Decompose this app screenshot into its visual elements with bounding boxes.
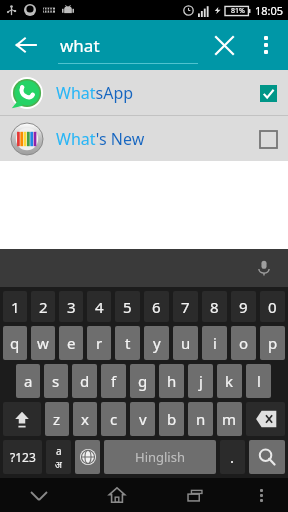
button[interactable]: Delete <box>246 402 285 436</box>
staticText: v <box>139 409 147 429</box>
button[interactable]: 9 <box>231 291 256 322</box>
staticText: e <box>67 333 76 353</box>
staticText: t <box>125 333 131 353</box>
button[interactable]: e <box>59 326 83 360</box>
staticText: अ <box>55 458 62 470</box>
button[interactable]: 5 <box>115 291 140 322</box>
button[interactable]: 2 <box>31 291 55 322</box>
button[interactable]: Change input language <box>75 440 100 474</box>
staticText: j <box>199 371 203 391</box>
button[interactable]: w <box>31 326 55 360</box>
button[interactable]: h <box>159 364 184 398</box>
staticText: r <box>96 333 103 353</box>
staticText: d <box>80 371 90 391</box>
button[interactable]: Shift <box>3 402 41 436</box>
staticText: Hinglish <box>135 448 185 466</box>
staticText: . <box>230 447 235 467</box>
button[interactable]: ?123 <box>3 440 42 474</box>
staticText: g <box>138 371 148 391</box>
button[interactable]: Clear search <box>204 25 244 65</box>
button[interactable]: 1 <box>3 291 27 322</box>
staticText: q <box>10 333 20 353</box>
button[interactable]: 4 <box>87 291 111 322</box>
button[interactable]: More options <box>234 478 288 512</box>
button[interactable]: Voice input <box>250 254 278 282</box>
button[interactable]: 6 <box>144 291 169 322</box>
staticText: WhatsApp <box>56 82 258 104</box>
button[interactable]: s <box>44 364 68 398</box>
button[interactable]: 3 <box>59 291 83 322</box>
button[interactable]: q <box>3 326 27 360</box>
button[interactable]: c <box>101 402 126 436</box>
staticText: 7 <box>181 297 190 317</box>
button[interactable]: Back <box>4 23 48 67</box>
button[interactable]: i <box>202 326 227 360</box>
staticText: l <box>257 371 261 391</box>
button[interactable]: . <box>220 440 245 474</box>
button[interactable]: What's New <box>0 116 288 161</box>
staticText: ?123 <box>10 449 36 465</box>
button[interactable]: b <box>159 402 184 436</box>
staticText: m <box>222 409 237 429</box>
staticText: k <box>225 371 234 391</box>
staticText: a <box>56 444 62 458</box>
staticText: p <box>268 333 278 353</box>
button[interactable]: p <box>260 326 285 360</box>
button[interactable]: Switch language <box>46 440 71 474</box>
button[interactable]: o <box>231 326 256 360</box>
button[interactable]: Home <box>78 478 156 512</box>
button[interactable]: 7 <box>173 291 198 322</box>
button[interactable]: n <box>188 402 213 436</box>
button[interactable]: g <box>130 364 155 398</box>
button[interactable]: 8 <box>202 291 227 322</box>
staticText: 81% <box>231 6 245 16</box>
staticText: z <box>53 409 61 429</box>
button[interactable]: k <box>217 364 242 398</box>
button[interactable]: 0 <box>260 291 285 322</box>
staticText: w <box>37 333 49 353</box>
button[interactable]: j <box>188 364 213 398</box>
staticText: What's New <box>56 128 258 150</box>
button[interactable]: Recent apps <box>156 478 234 512</box>
staticText: o <box>239 333 249 353</box>
button[interactable]: More options <box>246 25 286 65</box>
button[interactable]: r <box>87 326 111 360</box>
staticText: b <box>167 409 177 429</box>
staticText: x <box>81 409 89 429</box>
button[interactable]: m <box>217 402 242 436</box>
staticText: 1 <box>11 297 20 317</box>
staticText: 3 <box>67 297 76 317</box>
button[interactable]: Hide keyboard <box>0 478 78 512</box>
button[interactable]: f <box>101 364 126 398</box>
button[interactable]: Hinglish <box>104 440 216 474</box>
button[interactable]: Search <box>249 440 285 474</box>
staticText: s <box>52 371 60 391</box>
button[interactable]: z <box>45 402 69 436</box>
staticText: 2 <box>39 297 48 317</box>
staticText: 0 <box>268 297 277 317</box>
staticText: 18:05 <box>255 3 284 18</box>
button[interactable]: t <box>115 326 140 360</box>
button[interactable]: x <box>73 402 97 436</box>
staticText: what <box>60 34 100 57</box>
button[interactable]: l <box>246 364 271 398</box>
staticText: u <box>181 333 191 353</box>
staticText: c <box>110 409 118 429</box>
button[interactable]: y <box>144 326 169 360</box>
staticText: 8 <box>210 297 219 317</box>
staticText: 5 <box>123 297 132 317</box>
button[interactable]: a <box>16 364 40 398</box>
staticText: a <box>24 371 33 391</box>
staticText: 6 <box>152 297 161 317</box>
button[interactable]: v <box>130 402 155 436</box>
staticText: h <box>167 371 177 391</box>
staticText: f <box>111 371 117 391</box>
staticText: 9 <box>239 297 248 317</box>
staticText: i <box>213 333 217 353</box>
button[interactable]: d <box>72 364 97 398</box>
staticText: n <box>196 409 206 429</box>
staticText: 4 <box>95 297 104 317</box>
button[interactable]: WhatsApp <box>0 70 288 115</box>
button[interactable]: u <box>173 326 198 360</box>
staticText: y <box>153 333 161 353</box>
